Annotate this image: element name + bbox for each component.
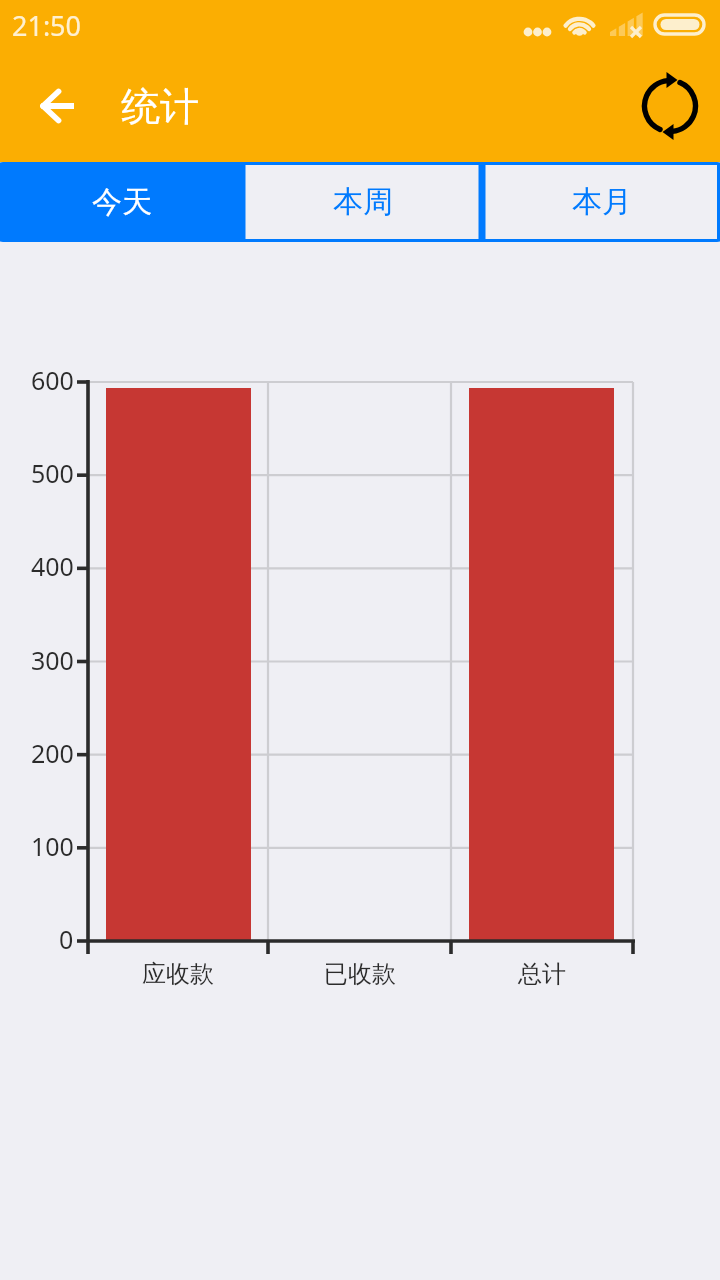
staticText: 总计 <box>518 959 566 989</box>
button[interactable]: Refresh <box>634 70 706 142</box>
staticText: 100 <box>31 829 74 863</box>
button[interactable]: 本周 <box>246 165 479 239</box>
staticText: 600 <box>31 363 74 397</box>
staticText: 今天 <box>92 183 152 221</box>
button[interactable]: 本月 <box>486 165 717 239</box>
staticText: 已收款 <box>324 959 396 989</box>
button[interactable]: 今天 <box>0 165 244 239</box>
staticText: 21:50 <box>12 7 82 44</box>
staticText: 统计 <box>121 82 199 131</box>
button[interactable]: Back <box>30 78 86 134</box>
staticText: 应收款 <box>142 959 214 989</box>
staticText: 0 <box>59 922 74 956</box>
staticText: 本周 <box>333 183 393 221</box>
staticText: 300 <box>31 643 74 677</box>
staticText: 本月 <box>572 183 632 221</box>
staticText: 400 <box>31 549 74 583</box>
staticText: 200 <box>31 736 74 770</box>
staticText: 500 <box>31 456 74 490</box>
